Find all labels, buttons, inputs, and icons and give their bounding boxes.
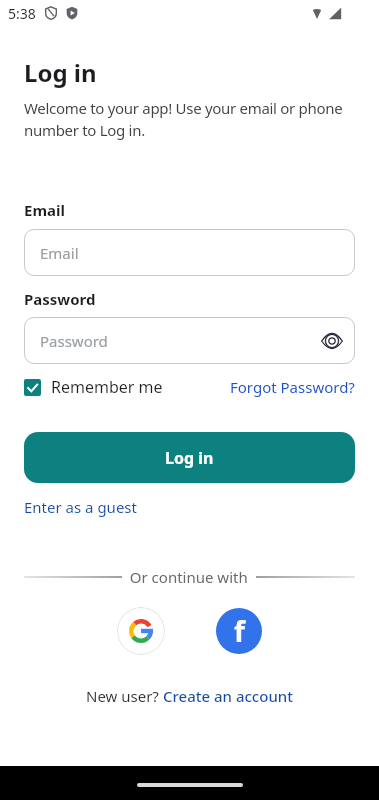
button[interactable]: Forgot Password? bbox=[230, 377, 355, 397]
staticText: New user? bbox=[86, 686, 163, 706]
button[interactable]: Password bbox=[24, 317, 355, 364]
button[interactable]: Create an account bbox=[163, 686, 293, 706]
button[interactable]: Enter as a guest bbox=[24, 497, 137, 517]
button[interactable] bbox=[117, 607, 165, 655]
button[interactable]: Log in bbox=[24, 432, 355, 483]
staticText: Email bbox=[24, 200, 65, 220]
staticText: f bbox=[234, 612, 245, 650]
staticText: 5:38 bbox=[8, 4, 36, 23]
staticText: Welcome to your app! Use your email or p… bbox=[24, 98, 343, 141]
staticText: Password bbox=[24, 289, 96, 309]
button[interactable]: Email bbox=[24, 229, 355, 276]
staticText: Email bbox=[40, 243, 79, 263]
staticText: Remember me bbox=[51, 376, 163, 398]
staticText: Log in bbox=[24, 56, 97, 89]
staticText: Log in bbox=[165, 447, 214, 469]
button[interactable]: Remember me bbox=[24, 376, 163, 398]
staticText: Password bbox=[40, 331, 108, 351]
staticText: Or continue with bbox=[122, 567, 256, 587]
button[interactable]: f bbox=[216, 608, 262, 654]
